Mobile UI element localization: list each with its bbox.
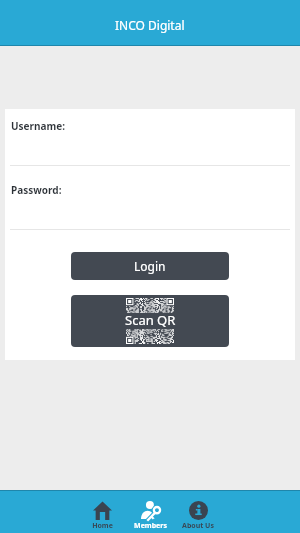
staticText: Password: xyxy=(11,183,62,197)
other: Members xyxy=(141,501,160,520)
staticText: About Us xyxy=(182,521,214,531)
staticText: INCO Digital xyxy=(115,17,185,33)
staticText: Login xyxy=(134,258,166,274)
button[interactable]: Username: xyxy=(5,109,295,166)
staticText: Username: xyxy=(11,119,66,133)
button[interactable]: Password: xyxy=(5,166,295,230)
staticText: Scan QR xyxy=(125,311,176,329)
button[interactable]: Scan QR xyxy=(71,295,229,347)
button[interactable]: Members xyxy=(126,491,174,533)
other: About Us xyxy=(189,501,208,520)
button[interactable]: About Us xyxy=(174,491,222,533)
button[interactable]: Login xyxy=(71,252,229,280)
staticText: Members xyxy=(134,521,167,531)
other: Home xyxy=(93,501,112,520)
button[interactable]: Home xyxy=(79,491,126,533)
staticText: Home xyxy=(92,521,113,531)
